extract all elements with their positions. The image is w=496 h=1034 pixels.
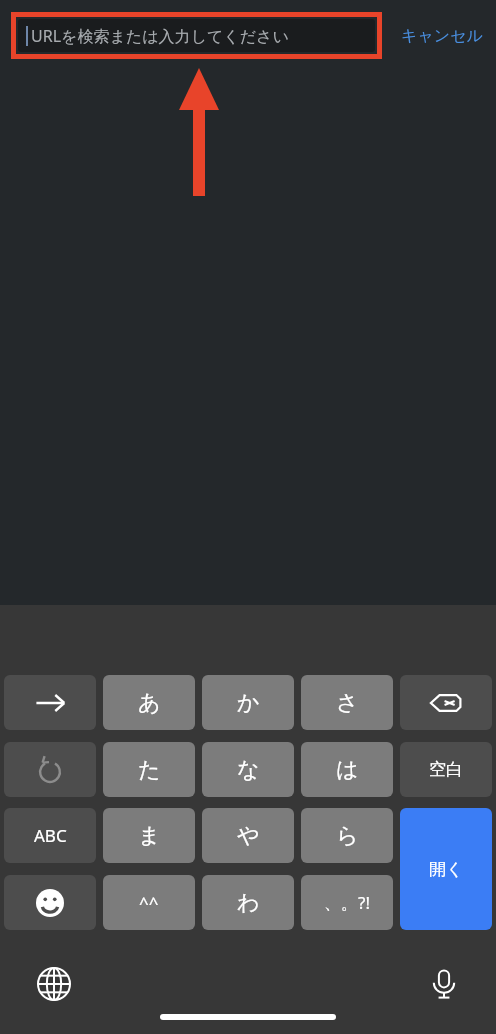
button[interactable]: 開く bbox=[400, 808, 492, 930]
button[interactable]: た bbox=[103, 742, 195, 797]
staticText: は bbox=[336, 756, 359, 784]
staticText: や bbox=[237, 822, 260, 850]
button[interactable]: Emoji bbox=[4, 875, 96, 930]
button[interactable]: わ bbox=[202, 875, 294, 930]
staticText: ^^ bbox=[139, 891, 159, 914]
button[interactable]: か bbox=[202, 675, 294, 730]
staticText: 開く bbox=[429, 859, 464, 880]
button[interactable]: ら bbox=[301, 808, 393, 863]
button[interactable]: あ bbox=[103, 675, 195, 730]
button[interactable]: Backspace bbox=[400, 675, 492, 730]
button[interactable]: Dictation bbox=[420, 960, 468, 1008]
staticText: 空白 bbox=[429, 759, 463, 780]
staticText: な bbox=[237, 756, 260, 784]
button[interactable]: キャンセル bbox=[392, 18, 492, 54]
button[interactable]: URLを検索または入力してください bbox=[18, 19, 375, 52]
staticText: URLを検索または入力してください bbox=[31, 25, 289, 47]
staticText: か bbox=[237, 689, 260, 717]
staticText: ま bbox=[138, 822, 161, 850]
staticText: キャンセル bbox=[401, 26, 483, 46]
staticText: ら bbox=[336, 822, 359, 850]
staticText: た bbox=[138, 756, 161, 784]
button[interactable]: 、。?! bbox=[301, 875, 393, 930]
button[interactable]: Next candidate bbox=[4, 675, 96, 730]
button[interactable]: さ bbox=[301, 675, 393, 730]
button[interactable]: ABC bbox=[4, 808, 96, 863]
button[interactable]: 空白 bbox=[400, 742, 492, 797]
button[interactable]: な bbox=[202, 742, 294, 797]
button[interactable]: は bbox=[301, 742, 393, 797]
button[interactable]: ^^ bbox=[103, 875, 195, 930]
button[interactable]: Switch keyboard bbox=[30, 960, 78, 1008]
staticText: さ bbox=[336, 689, 359, 717]
button[interactable]: や bbox=[202, 808, 294, 863]
button[interactable]: Undo bbox=[4, 742, 96, 797]
staticText: ABC bbox=[34, 824, 67, 847]
staticText: あ bbox=[138, 689, 161, 717]
staticText: わ bbox=[237, 889, 260, 917]
button[interactable]: ま bbox=[103, 808, 195, 863]
staticText: 、。?! bbox=[324, 891, 370, 914]
